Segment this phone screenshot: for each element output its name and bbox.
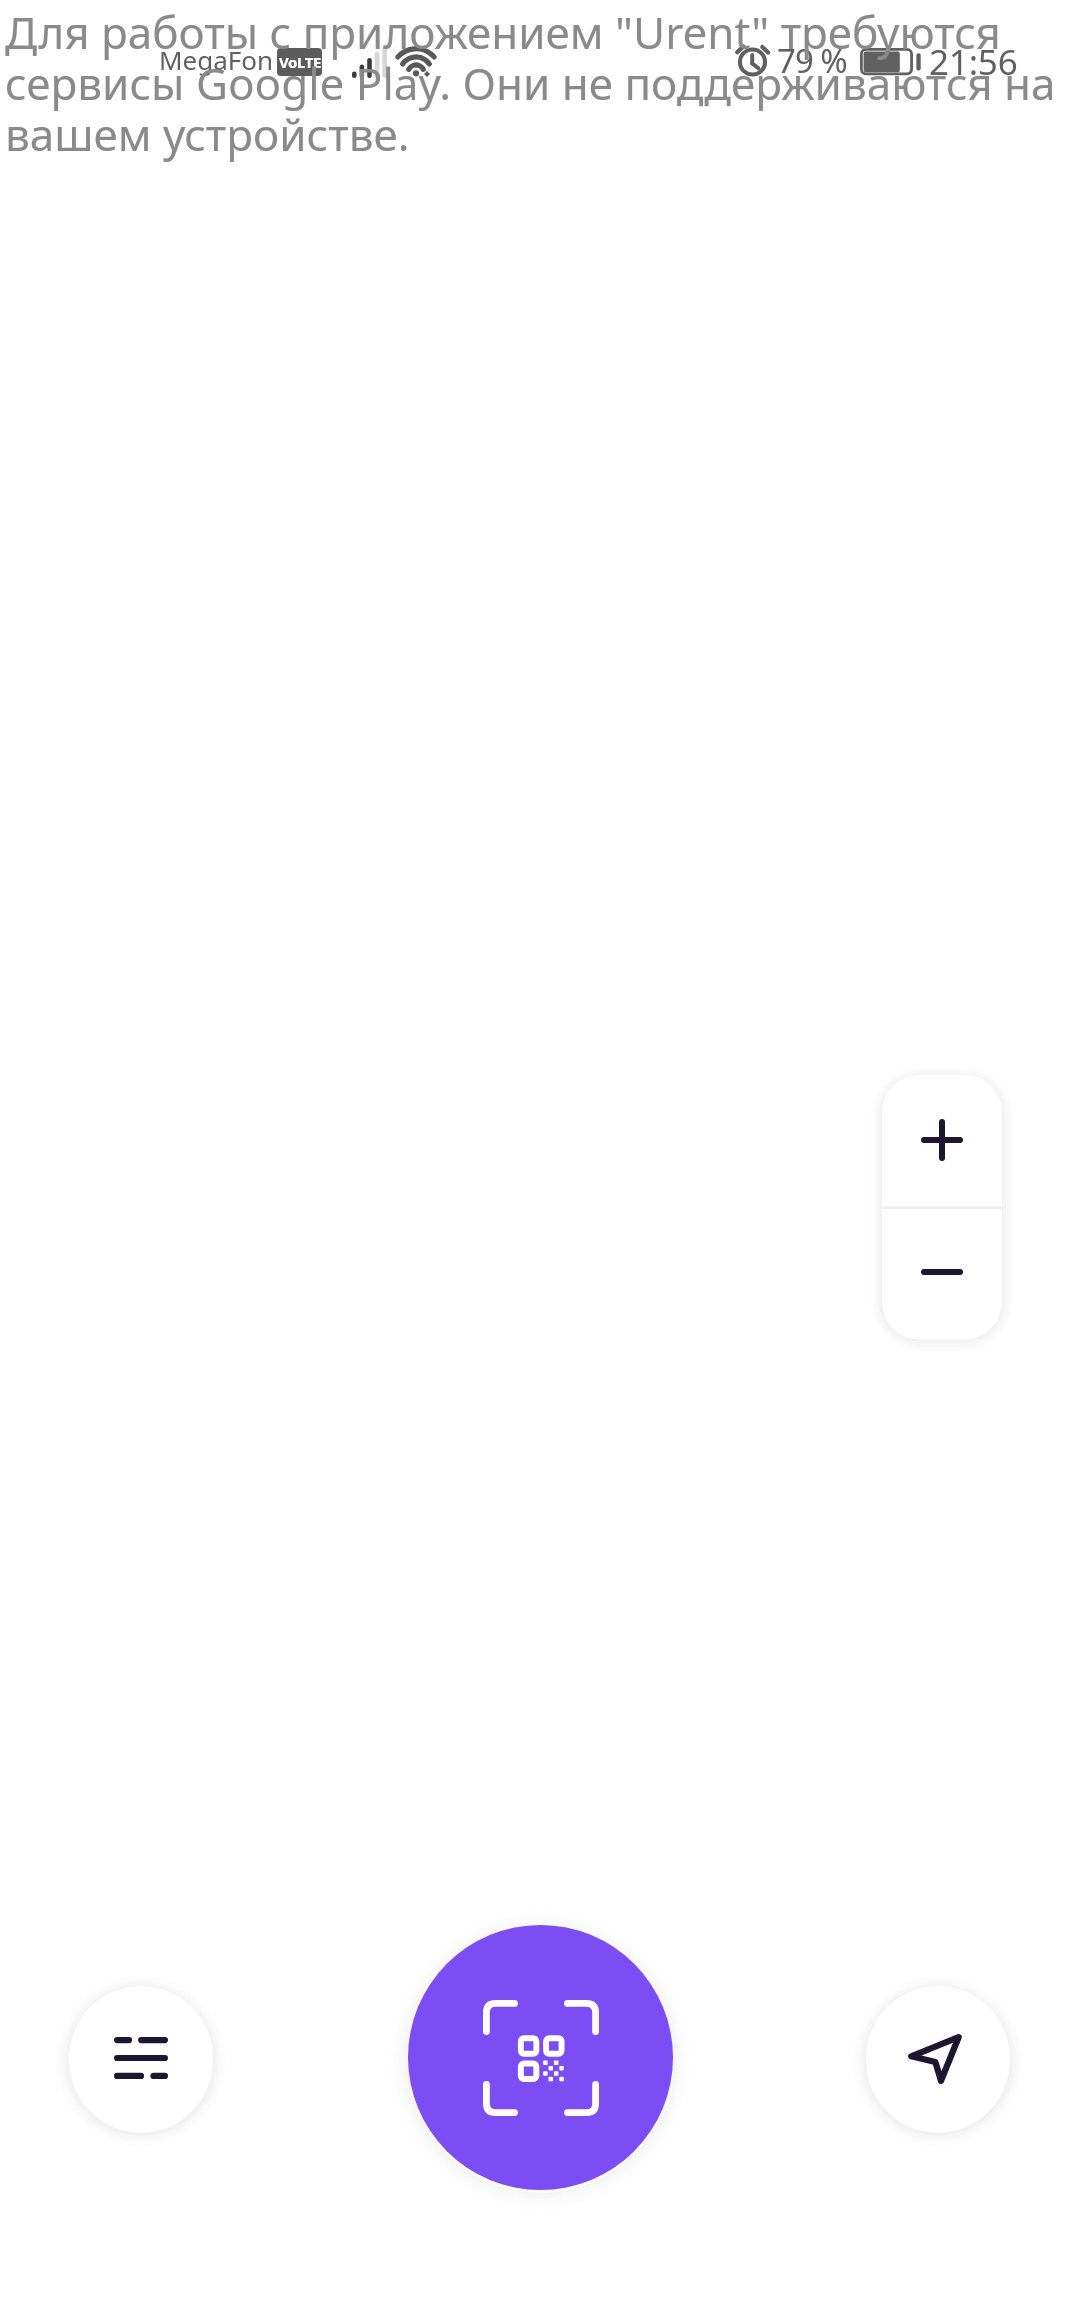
staticText: 79 % [777,38,847,83]
button[interactable]: Zoom out [882,1209,1002,1337]
staticText: Для работы с приложением "Urent" требуют… [5,2,1060,164]
button[interactable]: Scan QR code [408,1925,673,2190]
staticText: MegaFon [159,42,274,77]
button[interactable]: My location [866,1986,1010,2130]
button[interactable]: Menu [69,1986,213,2130]
button[interactable]: Zoom in [882,1075,1002,1206]
staticText: 21:56 [929,38,1018,86]
staticText: VoLTE [279,52,321,72]
